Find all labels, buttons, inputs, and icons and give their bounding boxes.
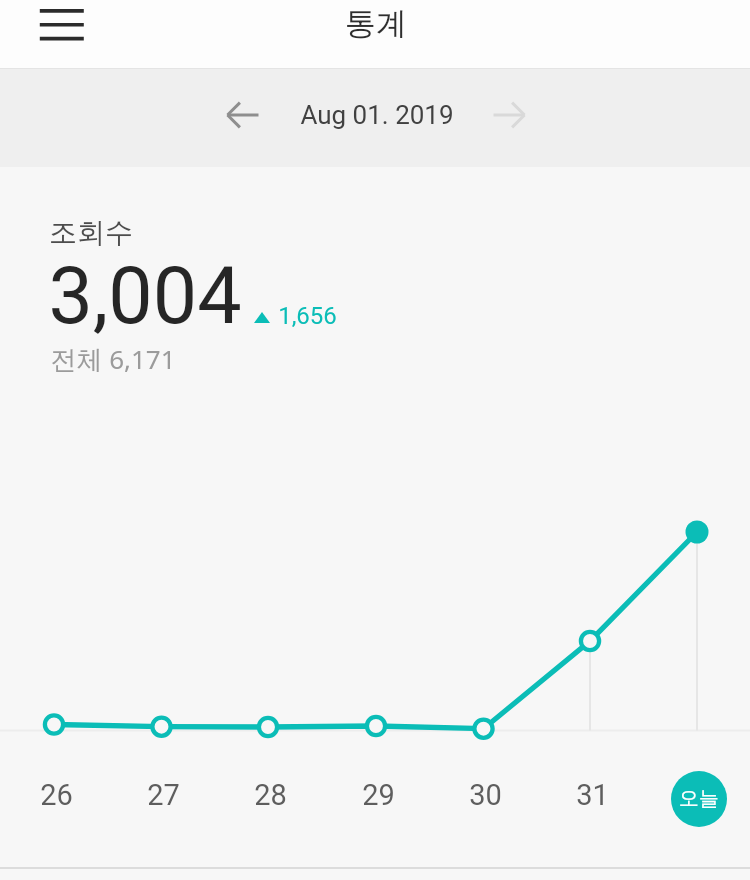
staticText: Aug 01. 2019 — [300, 100, 454, 130]
button[interactable]: 28 — [235, 769, 305, 821]
button[interactable]: Previous day — [212, 84, 273, 145]
staticText: 전체 6,171 — [50, 341, 176, 377]
staticText: 28 — [254, 778, 287, 812]
button[interactable]: Today — [671, 771, 727, 827]
button[interactable]: 29 — [343, 769, 413, 821]
staticText: 3,004 — [48, 250, 242, 343]
staticText: 31 — [576, 778, 609, 812]
button[interactable]: Next day — [478, 84, 539, 145]
button[interactable]: 26 — [21, 769, 91, 821]
staticText: 통계 — [345, 4, 407, 43]
staticText: 29 — [362, 778, 395, 812]
staticText: 30 — [469, 778, 502, 812]
button[interactable]: 30 — [450, 769, 520, 821]
staticText: 26 — [40, 778, 73, 812]
button[interactable]: Open navigation menu — [10, 0, 114, 69]
staticText: 27 — [147, 778, 180, 812]
staticText: 조회수 — [49, 215, 133, 250]
button[interactable]: 31 — [557, 769, 627, 821]
staticText: 1,656 — [278, 302, 337, 330]
button[interactable]: 27 — [128, 769, 198, 821]
staticText: 오늘 — [679, 786, 719, 811]
